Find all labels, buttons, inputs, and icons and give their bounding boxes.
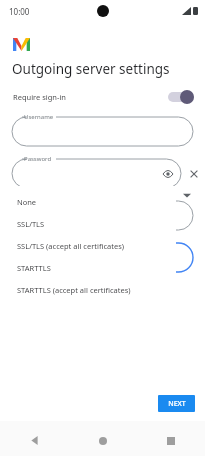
staticText: Security type (13, 282, 50, 290)
staticText: STARTTLS (accept all certificates) (17, 285, 131, 295)
staticText: Port (24, 239, 36, 247)
button[interactable]: STARTTLS (6, 257, 176, 279)
button[interactable]: STARTTLS (accept all certificates) (6, 279, 176, 301)
button[interactable]: Recents (137, 425, 205, 456)
staticText: SSL/TLS (17, 219, 45, 229)
staticText: 10:00 (9, 6, 30, 17)
staticText: Outgoing server settings (12, 60, 170, 78)
staticText: STARTTLS (17, 263, 51, 273)
button[interactable]: SSL/TLS (6, 213, 176, 235)
button[interactable]: Require sign-in toggle (168, 90, 194, 104)
button[interactable]: None (6, 191, 176, 213)
button[interactable]: SSL/TLS (accept all certificates) (6, 235, 176, 257)
button[interactable]: Show password (162, 168, 174, 180)
staticText: Password (24, 155, 52, 163)
button[interactable]: Username (12, 117, 193, 146)
button[interactable]: SMTP server (12, 201, 193, 230)
button[interactable]: Security type dropdown (183, 191, 191, 199)
staticText: None (17, 197, 37, 207)
button[interactable]: NEXT (158, 395, 195, 412)
button[interactable]: Require sign-in (0, 88, 205, 106)
staticText: SMTP server (24, 197, 59, 205)
staticText: NEXT (168, 399, 186, 409)
button[interactable]: Clear password (187, 167, 201, 181)
staticText: Require sign-in (13, 92, 66, 102)
staticText: Username (24, 113, 54, 121)
button[interactable]: Password (12, 159, 181, 188)
button[interactable]: Back (0, 425, 69, 456)
button[interactable]: Port (12, 243, 193, 272)
button[interactable]: Home (69, 425, 137, 456)
staticText: SSL/TLS (accept all certificates) (17, 241, 124, 251)
